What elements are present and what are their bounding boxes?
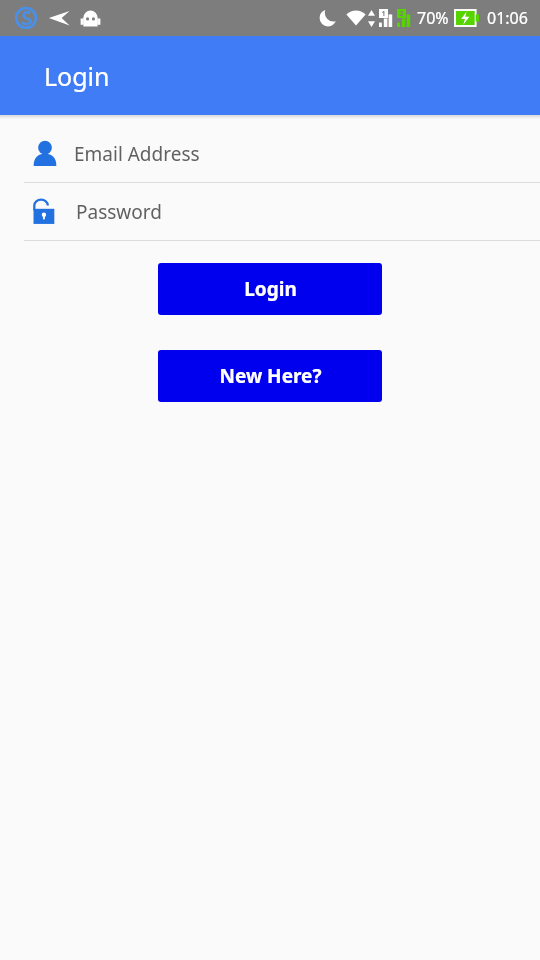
staticText: 1 [381, 9, 386, 18]
staticText: Login [44, 59, 110, 93]
staticText: New Here? [219, 363, 322, 389]
button[interactable]: Login [158, 263, 382, 315]
staticText: 70% [417, 7, 449, 29]
button[interactable]: New Here? [158, 350, 382, 402]
staticText: Login [244, 276, 297, 302]
button[interactable]: Email Address [0, 125, 540, 183]
staticText: 2 [399, 9, 404, 18]
staticText: Password [76, 199, 162, 225]
staticText: 01:06 [487, 7, 528, 29]
staticText: Email Address [74, 141, 200, 167]
button[interactable]: Password [0, 183, 540, 241]
